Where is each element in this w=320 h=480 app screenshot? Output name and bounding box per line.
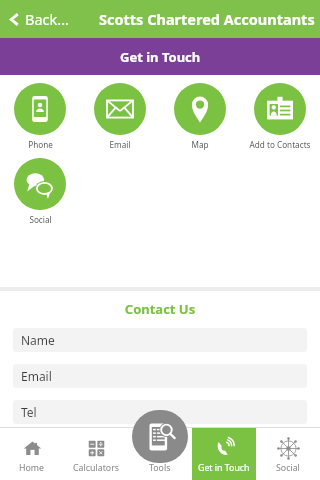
button[interactable]: Back <box>3 3 74 35</box>
button[interactable]: Social <box>256 427 320 480</box>
other: Add to Contacts <box>254 83 306 135</box>
staticText: Social <box>276 462 300 474</box>
button[interactable]: Get in Touch <box>192 427 256 480</box>
staticText: Scotts Chartered Accountants <box>99 9 315 29</box>
staticText: Calculators <box>73 462 119 474</box>
staticText: Tel <box>21 404 37 420</box>
button[interactable]: Social <box>0 157 80 226</box>
button[interactable]: Tools <box>132 410 188 463</box>
staticText: Map <box>191 139 209 150</box>
other: Email <box>94 83 146 135</box>
button[interactable]: Map <box>160 82 240 151</box>
staticText: Tools <box>149 462 171 474</box>
button[interactable]: Email <box>80 82 160 151</box>
other: Phone <box>14 83 66 135</box>
staticText: Get in Touch <box>198 462 250 474</box>
staticText: Home <box>19 462 45 474</box>
staticText: Add to Contacts <box>249 139 311 150</box>
staticText: Email <box>109 139 131 150</box>
button[interactable]: Phone <box>0 82 80 151</box>
staticText: Name <box>21 332 55 348</box>
staticText: Phone <box>28 139 53 150</box>
button[interactable]: Email <box>13 364 307 388</box>
button[interactable]: Tel <box>13 400 307 424</box>
button[interactable]: Calculators <box>64 427 128 480</box>
staticText: Get in Touch <box>120 48 201 66</box>
staticText: Social <box>29 214 52 225</box>
button[interactable]: Home <box>0 427 64 480</box>
other: Social <box>14 158 66 210</box>
staticText: Back... <box>25 9 69 29</box>
other: Map <box>174 83 226 135</box>
staticText: Email <box>21 368 52 384</box>
button[interactable]: Add to Contacts <box>240 82 320 151</box>
button[interactable]: Name <box>13 328 307 352</box>
staticText: Contact Us <box>0 300 320 318</box>
button[interactable]: Tools <box>128 427 192 480</box>
